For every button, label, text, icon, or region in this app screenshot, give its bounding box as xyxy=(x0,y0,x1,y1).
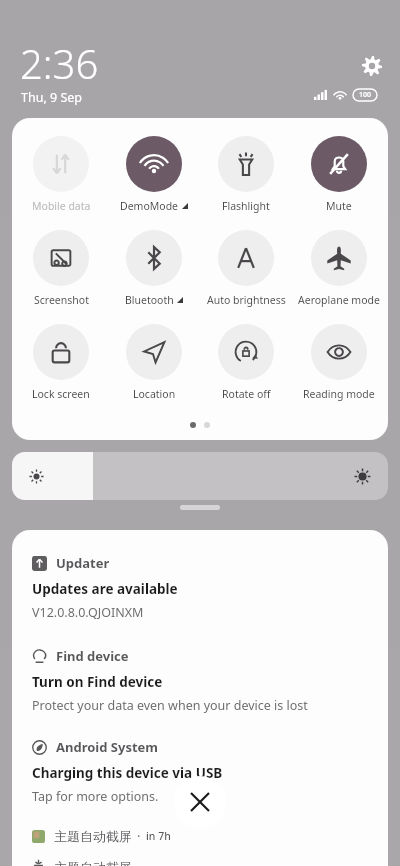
staticText: Flashlight xyxy=(222,199,270,213)
staticText: 2:36 xyxy=(20,36,99,90)
staticText: V12.0.8.0.QJOINXM xyxy=(32,604,144,621)
button[interactable]: Location xyxy=(110,322,198,403)
button[interactable]: Screenshot xyxy=(17,228,105,309)
button[interactable]: Mobile data xyxy=(17,134,105,215)
button[interactable]: Settings xyxy=(357,51,387,81)
staticText: Auto brightness xyxy=(207,293,286,307)
button[interactable]: Aeroplane mode xyxy=(295,228,383,309)
staticText: Aeroplane mode xyxy=(298,293,380,307)
button[interactable]: Auto brightness xyxy=(202,228,290,309)
staticText: Lock screen xyxy=(32,387,90,401)
staticText: Android System xyxy=(56,738,159,756)
button[interactable]: Find device xyxy=(32,647,370,665)
staticText: Tap for more options. xyxy=(32,788,159,805)
button[interactable]: Lock screen xyxy=(17,322,105,403)
staticText: 100 xyxy=(359,90,372,100)
staticText: Charging this device via USB xyxy=(32,764,223,782)
button[interactable]: Reading mode xyxy=(295,322,383,403)
button[interactable]: Clear all notifications xyxy=(174,776,226,828)
staticText: Turn on Find device xyxy=(32,673,163,691)
button[interactable]: Updater xyxy=(32,554,370,572)
staticText: Updates are available xyxy=(32,580,178,598)
staticText: Rotate off xyxy=(222,387,271,401)
button[interactable]: DemoMode xyxy=(110,134,198,215)
staticText: 主题自动截屏 xyxy=(54,859,132,866)
button[interactable]: Flashlight xyxy=(202,134,290,215)
staticText: in 7h xyxy=(146,829,171,843)
button[interactable]: Android System xyxy=(32,738,370,756)
staticText: Updater xyxy=(56,554,110,572)
staticText: Protect your data even when your device … xyxy=(32,697,308,714)
staticText: · xyxy=(137,827,141,845)
staticText: DemoMode xyxy=(120,199,179,213)
staticText: 主题自动截屏 xyxy=(54,828,132,844)
button[interactable]: Rotate off xyxy=(202,322,290,403)
staticText: Mobile data xyxy=(32,199,91,213)
staticText: Screenshot xyxy=(34,293,89,307)
staticText: Location xyxy=(133,387,176,401)
staticText: Thu, 9 Sep xyxy=(21,89,83,106)
button[interactable] xyxy=(12,452,388,500)
button[interactable]: Mute xyxy=(295,134,383,215)
staticText: Reading mode xyxy=(303,387,375,401)
staticText: Bluetooth xyxy=(125,293,174,307)
staticText: Mute xyxy=(326,199,352,213)
button[interactable]: Bluetooth xyxy=(110,228,198,309)
staticText: Find device xyxy=(56,647,129,665)
